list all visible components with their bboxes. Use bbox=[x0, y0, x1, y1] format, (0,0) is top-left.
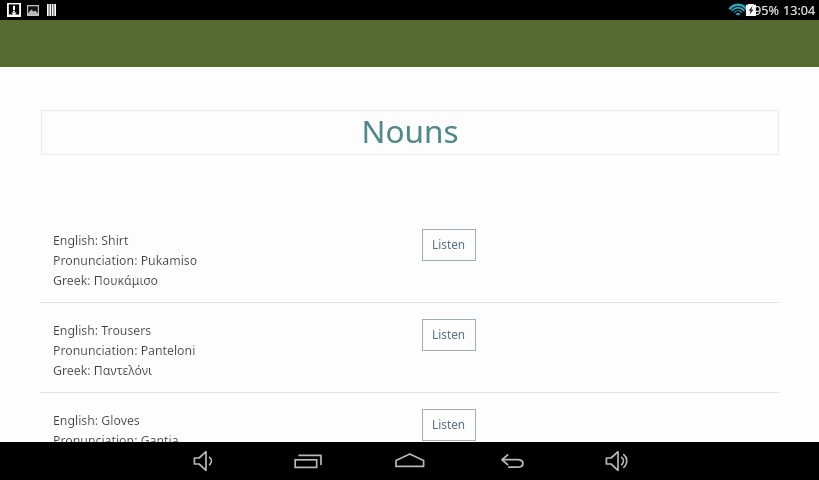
staticText: Pronunciation: Pukamiso bbox=[53, 252, 198, 269]
staticText: Listen bbox=[432, 236, 466, 252]
staticText: 95% bbox=[754, 2, 779, 19]
button[interactable]: Back bbox=[461, 442, 564, 480]
button[interactable]: Listen bbox=[422, 319, 476, 351]
button[interactable]: Recent apps bbox=[255, 442, 358, 480]
staticText: English: Shirt bbox=[53, 232, 129, 249]
staticText: Pronunciation: Gantia bbox=[53, 432, 179, 449]
button[interactable]: Home bbox=[358, 442, 461, 480]
staticText: Greek: Παντελόνι bbox=[53, 362, 153, 379]
staticText: Greek: Πουκάμισο bbox=[53, 272, 159, 289]
button[interactable]: English: Shirt bbox=[0, 213, 819, 302]
staticText: 13:04 bbox=[783, 2, 816, 19]
button[interactable]: English: Trousers bbox=[0, 303, 819, 392]
staticText: Listen bbox=[432, 326, 466, 342]
staticText: Listen bbox=[432, 416, 466, 432]
staticText: English: Trousers bbox=[53, 322, 152, 339]
staticText: Pronunciation: Panteloni bbox=[53, 342, 196, 359]
button[interactable]: English: Gloves bbox=[0, 393, 819, 480]
staticText: Nouns bbox=[361, 109, 459, 152]
button[interactable]: Listen bbox=[422, 229, 476, 261]
button[interactable]: Listen bbox=[422, 409, 476, 441]
button[interactable]: Volume up bbox=[564, 442, 667, 480]
staticText: English: Gloves bbox=[53, 412, 140, 429]
button[interactable]: Volume down bbox=[152, 442, 255, 480]
